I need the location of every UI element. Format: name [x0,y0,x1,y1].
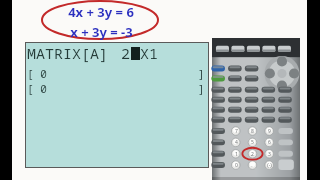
staticText: 9 [268,128,271,135]
staticText: . [251,162,253,169]
button[interactable]: MATRIX[A] [25,42,209,168]
staticText: (-) [267,162,272,169]
staticText: X1 [140,43,159,63]
staticText: 7 [235,128,238,135]
staticText: ] [198,66,205,81]
staticText: 6 [268,139,271,146]
staticText: 4 [235,139,238,146]
button[interactable]: Graphing calculator keypad [212,38,300,180]
staticText: 1 [235,151,238,158]
staticText: 3 [268,151,271,158]
staticText: x + 3y = -3 [70,23,133,41]
staticText: 0 [235,162,238,169]
staticText: 4x + 3y = 6 [68,3,134,21]
staticText: [ 0 [27,66,47,81]
button[interactable]: System of equations circled [40,0,162,42]
staticText: MATRIX[A] [27,43,109,63]
staticText: ] [198,81,205,96]
staticText: 2 [251,151,254,158]
staticText: 2 [121,43,131,63]
staticText: [ 0 [27,81,47,96]
staticText: 5 [251,139,254,146]
staticText: 8 [251,128,254,135]
